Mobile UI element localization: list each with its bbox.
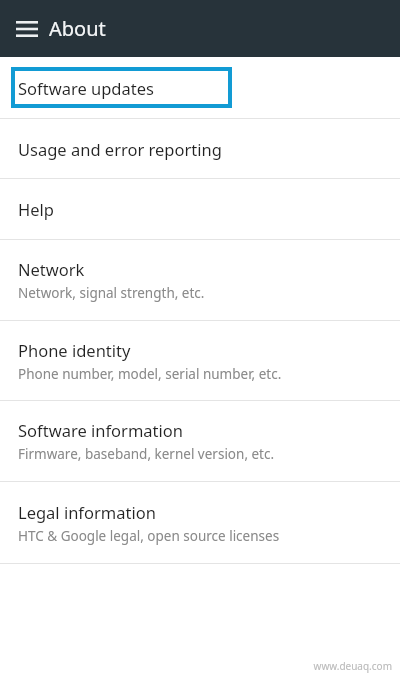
staticText: About: [49, 15, 106, 42]
staticText: Usage and error reporting: [18, 138, 222, 160]
button[interactable]: Legal information: [0, 482, 400, 563]
button[interactable]: Usage and error reporting: [0, 119, 400, 178]
staticText: www.deuaq.com: [313, 659, 392, 673]
button[interactable]: Software updates: [0, 57, 400, 118]
staticText: Software information: [18, 419, 183, 441]
button[interactable]: Network: [0, 240, 400, 320]
staticText: Help: [18, 198, 54, 220]
staticText: Firmware, baseband, kernel version, etc.: [18, 445, 275, 463]
staticText: Network, signal strength, etc.: [18, 284, 205, 302]
staticText: Legal information: [18, 501, 156, 523]
staticText: Network: [18, 258, 85, 280]
button[interactable]: Open navigation menu: [11, 13, 43, 45]
staticText: HTC & Google legal, open source licenses: [18, 527, 280, 545]
staticText: Phone identity: [18, 339, 131, 361]
staticText: Phone number, model, serial number, etc.: [18, 365, 282, 383]
staticText: Software updates: [18, 77, 154, 99]
button[interactable]: Help: [0, 179, 400, 239]
button[interactable]: Phone identity: [0, 321, 400, 400]
button[interactable]: Software information: [0, 401, 400, 481]
